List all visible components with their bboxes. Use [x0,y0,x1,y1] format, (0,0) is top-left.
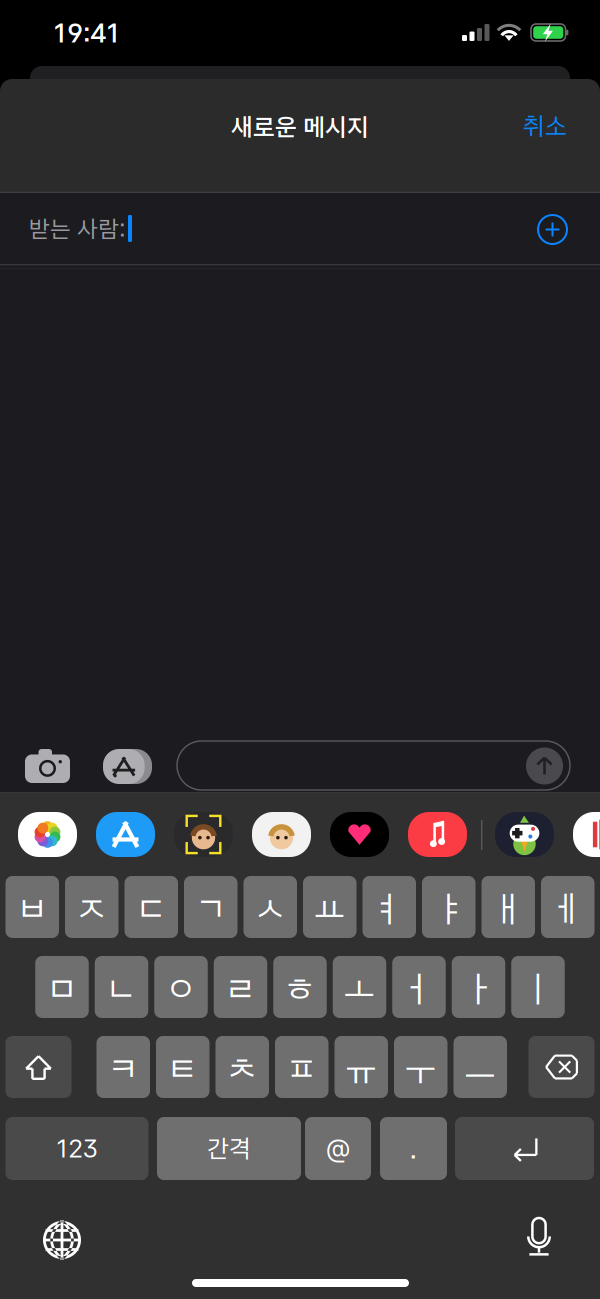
button[interactable]: App Store [103,749,152,784]
button[interactable]: Photos [18,812,77,857]
button[interactable]: Music [408,812,467,857]
staticText: ㅔ [553,887,582,927]
button[interactable]: App Store [96,812,155,857]
button[interactable]: . [380,1117,447,1180]
button[interactable]: ㅏ [452,956,505,1018]
staticText: ㅁ [47,967,76,1007]
staticText: ㅕ [375,887,404,927]
button[interactable]: ㅑ [422,876,475,938]
staticText: ㄴ [107,967,136,1007]
button[interactable]: ㅍ [275,1036,328,1098]
staticText: ㅇ [166,967,195,1007]
staticText: 취소 [523,111,567,141]
staticText: ㄹ [226,967,255,1007]
staticText: ㅌ [168,1047,197,1087]
staticText: ㅏ [464,967,493,1007]
button[interactable]: ㅂ [5,876,59,938]
button[interactable]: ㅜ [394,1036,447,1098]
button[interactable]: Dictate [524,1218,554,1260]
button[interactable]: Memoji [174,812,233,857]
button[interactable] [5,1036,71,1098]
staticText: 새로운 메시지 [231,112,369,142]
button[interactable]: 간격 [157,1117,301,1180]
button[interactable]: ㅣ [511,956,565,1018]
button[interactable]: 취소 [502,103,588,149]
button[interactable]: ㅐ [481,876,535,938]
staticText: 간격 [207,1133,251,1164]
button[interactable] [528,1036,594,1098]
staticText: 받는 사람: [29,215,126,243]
button[interactable] [455,1117,594,1180]
staticText: ㅐ [494,887,523,927]
staticText: ㅈ [77,887,106,927]
button[interactable]: 123 [5,1117,148,1180]
button[interactable]: ㅌ [156,1036,209,1098]
button[interactable]: ㅎ [273,956,327,1018]
button[interactable]: ㅠ [334,1036,388,1098]
button[interactable]: ㅊ [215,1036,269,1098]
staticText: ㅠ [347,1047,376,1087]
staticText: ㅍ [287,1047,316,1087]
button[interactable]: ㄴ [95,956,148,1018]
button[interactable]: Game Center [495,812,554,857]
staticText: @ [325,1132,350,1165]
button[interactable]: ㅡ [453,1036,507,1098]
staticText: ㅑ [434,887,463,927]
staticText: ㅣ [523,967,552,1007]
button[interactable]: Change keyboard [42,1220,82,1260]
button[interactable]: @ [305,1117,371,1180]
staticText: ㅊ [228,1047,257,1087]
button[interactable]: ㅇ [154,956,208,1018]
button[interactable]: ㅈ [65,876,118,938]
button[interactable]: ㅓ [392,956,446,1018]
button[interactable]: Send [526,747,563,785]
button[interactable]: ㄱ [184,876,237,938]
staticText: 123 [56,1133,97,1164]
button[interactable]: ㅕ [362,876,416,938]
button[interactable]: ㄹ [214,956,267,1018]
button[interactable]: Camera [25,749,70,783]
staticText: ㅅ [256,887,285,927]
button[interactable]: ㄷ [124,876,178,938]
button[interactable]: ㅋ [96,1036,150,1098]
button[interactable]: Books [573,812,600,857]
staticText: ㅓ [404,967,433,1007]
staticText: ㄷ [137,887,166,927]
button[interactable]: ㅗ [333,956,386,1018]
button[interactable]: Memoji stickers [252,812,311,857]
button[interactable]: Fitness [330,812,389,857]
staticText: ㅎ [285,967,314,1007]
staticText: ㅂ [18,887,47,927]
staticText: 19:41 [54,17,120,49]
button[interactable]: ㅅ [243,876,297,938]
button[interactable]: ㅛ [303,876,356,938]
staticText: ㅗ [345,967,374,1007]
button[interactable]: ㅔ [541,876,594,938]
staticText: ㅡ [466,1047,495,1087]
staticText: ㅋ [109,1047,138,1087]
staticText: ㅛ [315,887,344,927]
button[interactable]: ㅁ [35,956,89,1018]
staticText: . [409,1132,417,1165]
staticText: ㅜ [406,1047,435,1087]
button[interactable]: Add contact [537,214,568,245]
staticText: ㄱ [196,887,225,927]
